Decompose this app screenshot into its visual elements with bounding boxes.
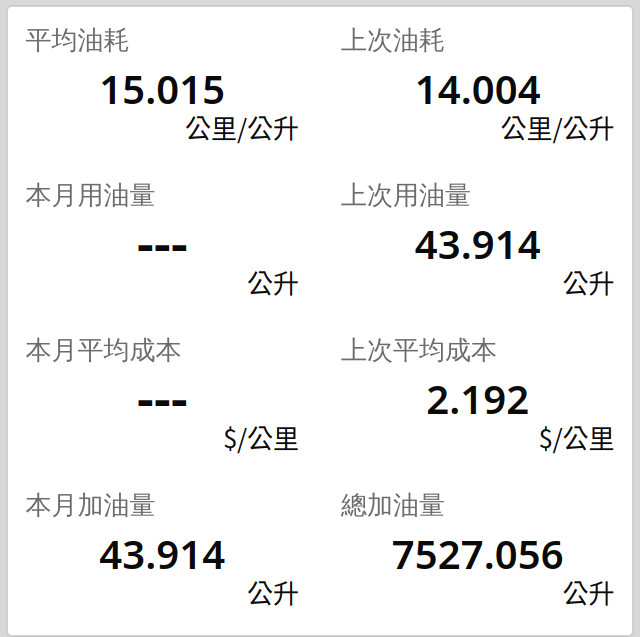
staticText: 公升 <box>247 263 299 301</box>
staticText: 43.914 <box>415 217 541 270</box>
staticText: 公里/公升 <box>500 108 614 146</box>
button[interactable]: 本月加油量 <box>25 472 299 627</box>
staticText: 公里/公升 <box>185 108 299 146</box>
staticText: 15.015 <box>99 62 225 115</box>
button[interactable]: 本月用油量 <box>25 162 299 317</box>
staticText: --- <box>137 362 188 433</box>
staticText: 公升 <box>562 573 614 611</box>
button[interactable]: 總加油量 <box>341 472 614 627</box>
staticText: 43.914 <box>99 527 225 580</box>
staticText: 上次平均成本 <box>341 334 497 367</box>
staticText: 上次油耗 <box>341 24 445 57</box>
staticText: 2.192 <box>426 372 529 425</box>
staticText: $/公里 <box>538 418 614 456</box>
button[interactable]: 上次平均成本 <box>341 317 614 472</box>
button[interactable]: 上次用油量 <box>341 162 614 317</box>
staticText: 14.004 <box>415 62 541 115</box>
staticText: 本月平均成本 <box>25 334 181 367</box>
staticText: $/公里 <box>223 418 299 456</box>
staticText: --- <box>137 207 188 278</box>
staticText: 平均油耗 <box>25 24 129 57</box>
button[interactable]: 本月平均成本 <box>25 317 299 472</box>
button[interactable]: 平均油耗 <box>25 7 299 162</box>
staticText: 7527.056 <box>392 527 564 580</box>
staticText: 公升 <box>562 263 614 301</box>
staticText: 公升 <box>247 573 299 611</box>
staticText: 本月用油量 <box>25 179 155 212</box>
staticText: 本月加油量 <box>25 489 155 522</box>
staticText: 總加油量 <box>341 489 445 522</box>
button[interactable]: 上次油耗 <box>341 7 614 162</box>
staticText: 上次用油量 <box>341 179 471 212</box>
